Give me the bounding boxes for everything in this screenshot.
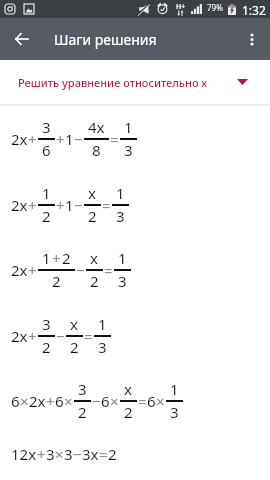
staticText: 2 [70, 337, 79, 357]
staticText: 1 [65, 129, 74, 149]
staticText: − [74, 195, 83, 215]
staticText: Решить уравнение относительно x [18, 75, 208, 90]
staticText: 6 [101, 391, 110, 411]
staticText: + [56, 195, 65, 215]
staticText: 1 [42, 248, 51, 268]
staticText: 3 [78, 379, 87, 399]
staticText: x [90, 248, 98, 268]
staticText: 1 [118, 248, 127, 268]
staticText: 3 [116, 206, 125, 226]
staticText: 3 [124, 140, 133, 160]
staticText: × [64, 391, 73, 411]
staticText: 12x [11, 444, 37, 464]
staticText: + [52, 248, 61, 268]
staticText: 2 [42, 206, 51, 226]
staticText: 2 [42, 337, 51, 357]
staticText: 1 [98, 314, 107, 334]
button[interactable]: 12x [0, 433, 270, 474]
staticText: × [20, 391, 29, 411]
staticText: − [73, 444, 82, 464]
staticText: 6 [42, 140, 51, 160]
staticText: 3 [42, 314, 51, 334]
staticText: + [56, 129, 65, 149]
staticText: 2x [29, 391, 46, 411]
staticText: 8 [92, 140, 101, 160]
button[interactable]: 6 [0, 368, 270, 433]
staticText: 2x [11, 326, 28, 346]
staticText: 6 [147, 391, 156, 411]
staticText: 2 [88, 206, 97, 226]
staticText: 2 [52, 271, 61, 291]
staticText: = [84, 326, 93, 346]
staticText: 3 [64, 444, 73, 464]
staticText: + [37, 444, 46, 464]
staticText: 3 [170, 402, 179, 422]
button[interactable]: 2x [0, 105, 270, 172]
staticText: 3x [82, 444, 99, 464]
staticText: = [104, 260, 113, 280]
staticText: 1 [116, 183, 125, 203]
staticText: 4x [88, 117, 105, 137]
staticText: 2 [108, 444, 117, 464]
staticText: x [124, 379, 132, 399]
button[interactable]: 2x [0, 303, 270, 368]
staticText: − [56, 326, 65, 346]
staticText: − [92, 391, 101, 411]
staticText: 3 [46, 444, 55, 464]
staticText: 1 [124, 117, 133, 137]
staticText: × [110, 391, 119, 411]
staticText: 1:32 [242, 2, 266, 18]
staticText: + [28, 260, 37, 280]
staticText: x [88, 183, 96, 203]
staticText: 6 [11, 391, 20, 411]
staticText: = [138, 391, 147, 411]
staticText: 2 [90, 271, 99, 291]
staticText: + [28, 326, 37, 346]
staticText: 1 [65, 195, 74, 215]
button[interactable]: 2x [0, 172, 270, 237]
staticText: H+ [176, 2, 186, 12]
staticText: = [102, 195, 111, 215]
staticText: 1 [170, 379, 179, 399]
staticText: − [76, 260, 85, 280]
staticText: 79% [207, 2, 223, 13]
staticText: + [28, 129, 37, 149]
button[interactable]: 2x [0, 237, 270, 303]
staticText: 3 [42, 117, 51, 137]
staticText: x [70, 314, 78, 334]
staticText: 1 [42, 183, 51, 203]
button[interactable]: Back [3, 18, 39, 60]
staticText: Шаги решения [54, 30, 157, 49]
staticText: 2x [11, 195, 28, 215]
staticText: 3 [98, 337, 107, 357]
staticText: 6 [55, 391, 64, 411]
staticText: 2 [62, 248, 71, 268]
staticText: − [74, 129, 83, 149]
staticText: 2x [11, 129, 28, 149]
staticText: 2x [11, 260, 28, 280]
button[interactable]: More options [237, 18, 267, 60]
staticText: × [55, 444, 64, 464]
staticText: + [28, 195, 37, 215]
staticText: 3 [118, 271, 127, 291]
staticText: + [46, 391, 55, 411]
staticText: 2 [124, 402, 133, 422]
staticText: = [110, 129, 119, 149]
staticText: = [99, 444, 108, 464]
staticText: 2 [78, 402, 87, 422]
button[interactable]: Решить уравнение относительно x [0, 60, 270, 105]
staticText: × [156, 391, 165, 411]
